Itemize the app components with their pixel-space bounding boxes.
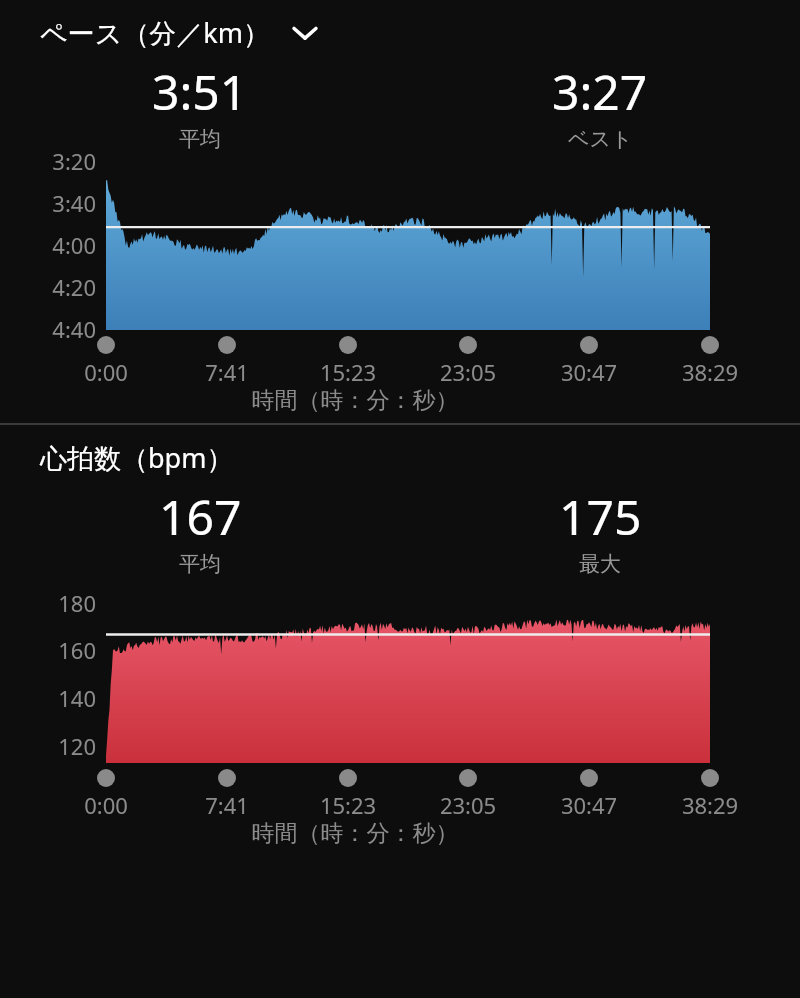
staticText: 4:00 [40,230,96,260]
staticText: 4:40 [40,314,96,344]
staticText: 時間（時：分：秒） [0,819,710,848]
staticText: 3:20 [40,146,96,176]
staticText: 7:41 [167,790,287,820]
staticText: 38:29 [650,357,770,387]
staticText: 時間（時：分：秒） [0,386,710,415]
staticText: 0:00 [46,790,166,820]
staticText: ペース（分／km） [40,14,270,51]
button[interactable]: ペース（分／km） [0,0,800,53]
button[interactable]: 3:51 [0,59,400,152]
staticText: ベスト [568,126,633,152]
staticText: 167 [159,484,242,549]
staticText: 3:40 [40,188,96,218]
staticText: 180 [40,588,96,618]
staticText: 140 [40,683,96,713]
staticText: 平均 [179,551,221,577]
staticText: 0:00 [46,357,166,387]
staticText: 15:23 [288,790,408,820]
staticText: 23:05 [408,357,528,387]
staticText: 23:05 [408,790,528,820]
staticText: 120 [40,731,96,761]
button[interactable]: 心拍数（bpm） [0,425,800,478]
staticText: 30:47 [529,790,649,820]
other: Change metric [288,16,322,50]
staticText: 最大 [579,551,621,577]
staticText: 38:29 [650,790,770,820]
staticText: 160 [40,635,96,665]
staticText: 4:20 [40,272,96,302]
staticText: 3:27 [552,59,648,124]
button[interactable]: 167 [0,484,400,577]
staticText: 心拍数（bpm） [40,439,234,476]
staticText: 175 [559,484,642,549]
button[interactable]: 3:27 [400,59,800,152]
button[interactable]: 175 [400,484,800,577]
staticText: 7:41 [167,357,287,387]
staticText: 平均 [179,126,221,152]
staticText: 3:51 [152,59,248,124]
staticText: 15:23 [288,357,408,387]
staticText: 30:47 [529,357,649,387]
